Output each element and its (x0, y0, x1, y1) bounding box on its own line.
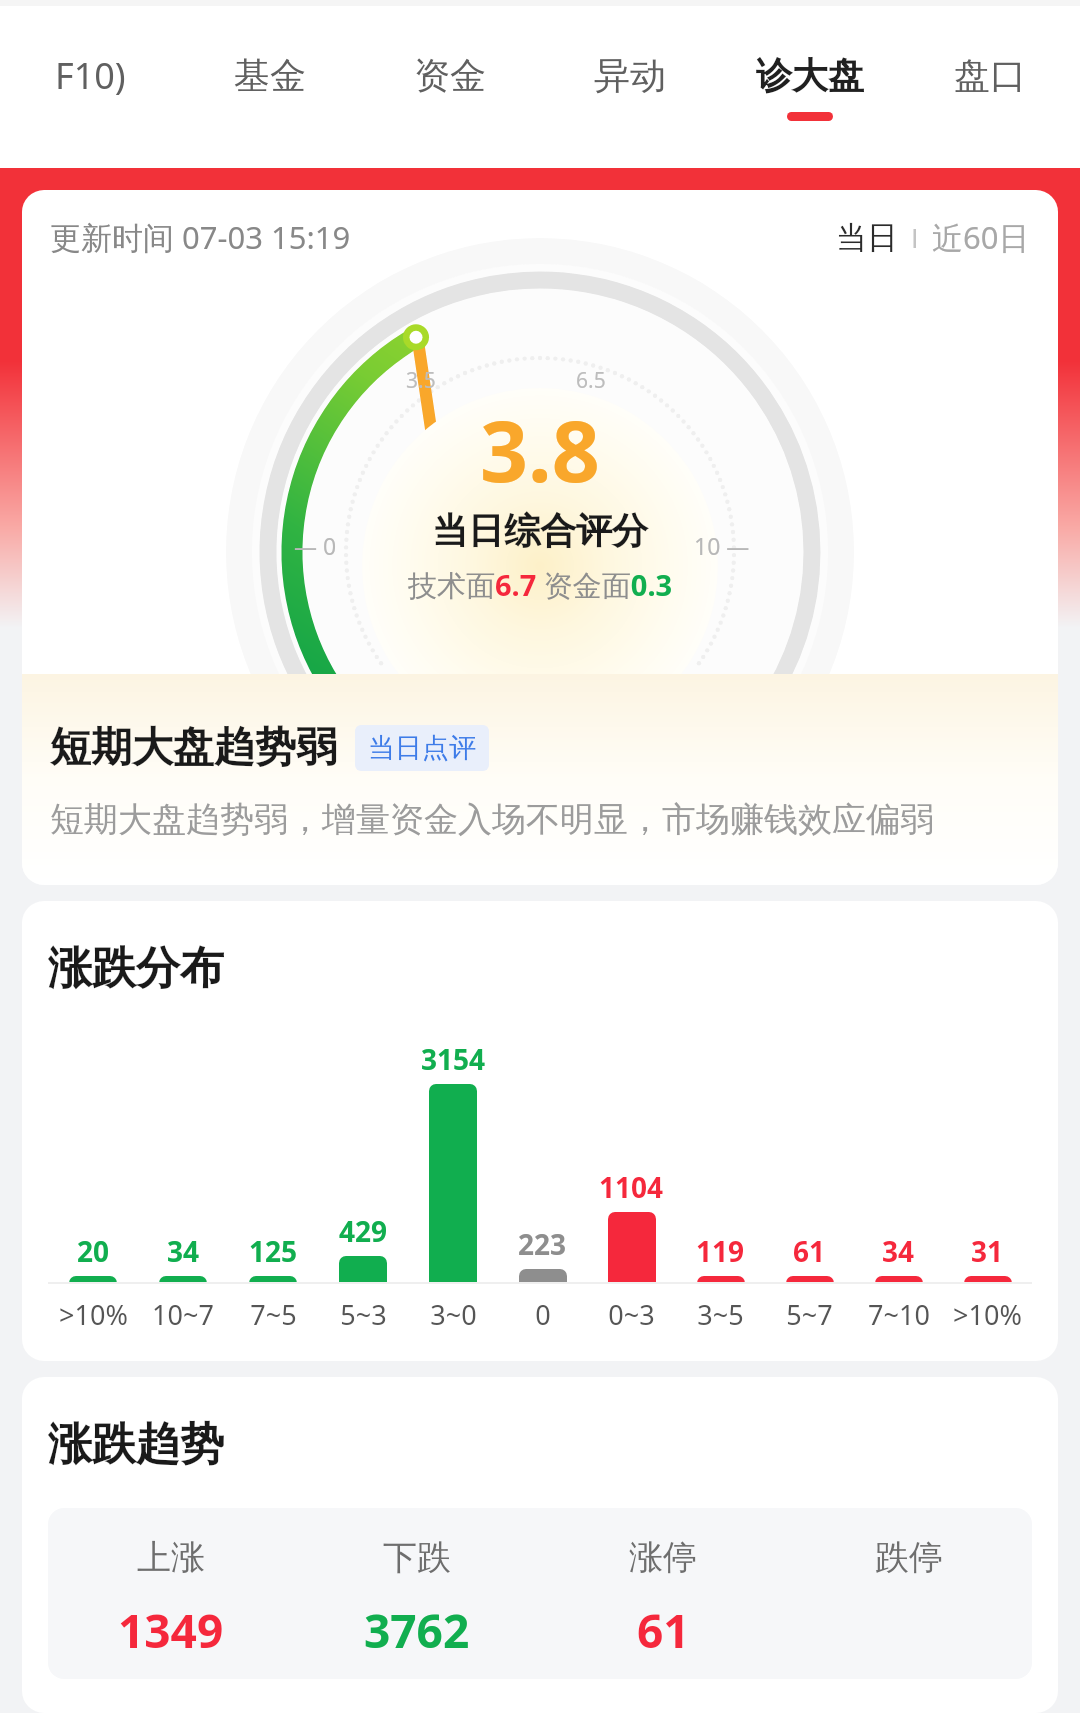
staticText: 6.5 (576, 366, 606, 395)
staticText: 3~5 (697, 1296, 744, 1333)
staticText: 125 (249, 1232, 298, 1270)
staticText: >10% (953, 1296, 1022, 1333)
staticText: 429 (339, 1212, 388, 1250)
staticText: 5~7 (786, 1296, 833, 1333)
button[interactable]: 短期大盘趋势弱 (22, 674, 1058, 885)
staticText: >10% (59, 1296, 128, 1333)
staticText: 3154 (421, 1040, 486, 1078)
staticText: 当日点评 (368, 731, 476, 765)
staticText: 3.8 (480, 392, 600, 506)
staticText: 7~10 (868, 1296, 930, 1333)
staticText: 异动 (594, 53, 666, 98)
staticText: 10 — (694, 530, 750, 561)
staticText: 31 (971, 1232, 1004, 1270)
staticText: 涨跌分布 (48, 941, 224, 996)
staticText: 诊大盘 (756, 53, 864, 98)
button[interactable]: 当日 (836, 218, 898, 257)
staticText: 61 (637, 1599, 690, 1651)
staticText: 0 (535, 1296, 551, 1333)
staticText: 资金 (414, 53, 486, 98)
button[interactable]: 资金 (360, 6, 540, 168)
staticText: l (898, 220, 932, 255)
staticText: 短期大盘趋势弱 (50, 722, 337, 774)
button[interactable]: F10) (0, 6, 180, 168)
staticText: 3762 (364, 1599, 470, 1651)
staticText: 下跌 (383, 1536, 451, 1579)
staticText: — 0 (294, 530, 337, 561)
button[interactable]: 基金 (180, 6, 360, 168)
staticText: 技术面6.7 资金面0.3 (408, 565, 673, 605)
staticText: 更新时间 07-03 15:19 (50, 216, 351, 258)
staticText: 223 (518, 1225, 567, 1263)
staticText: 近60日 (932, 216, 1030, 258)
button[interactable]: 诊大盘 (720, 6, 900, 168)
staticText: 上涨 (137, 1536, 205, 1579)
staticText: 7~5 (250, 1296, 297, 1333)
staticText: 短期大盘趋势弱，增量资金入场不明显，市场赚钱效应偏弱 (50, 798, 934, 841)
staticText: 当日 (836, 218, 898, 257)
staticText: 10~7 (152, 1296, 214, 1333)
button[interactable]: 异动 (540, 6, 720, 168)
button[interactable]: 盘口 (900, 6, 1080, 168)
staticText: 1104 (599, 1168, 664, 1206)
staticText: 涨跌趋势 (48, 1417, 224, 1472)
staticText: 3.5 (406, 366, 436, 395)
staticText: 5~3 (340, 1296, 387, 1333)
staticText: 61 (793, 1232, 826, 1270)
staticText: 基金 (234, 53, 306, 98)
staticText: 20 (77, 1232, 110, 1270)
staticText: 跌停 (875, 1536, 943, 1579)
staticText: 34 (882, 1232, 915, 1270)
staticText: 119 (696, 1232, 745, 1270)
staticText: 0~3 (608, 1296, 655, 1333)
button[interactable]: 近60日 (932, 216, 1030, 258)
staticText: 34 (167, 1232, 200, 1270)
staticText: 盘口 (954, 53, 1026, 98)
staticText: 当日综合评分 (432, 508, 648, 553)
staticText: 1349 (118, 1599, 224, 1651)
staticText: F10) (55, 51, 126, 100)
staticText: 涨停 (629, 1536, 697, 1579)
staticText: 3~0 (430, 1296, 477, 1333)
